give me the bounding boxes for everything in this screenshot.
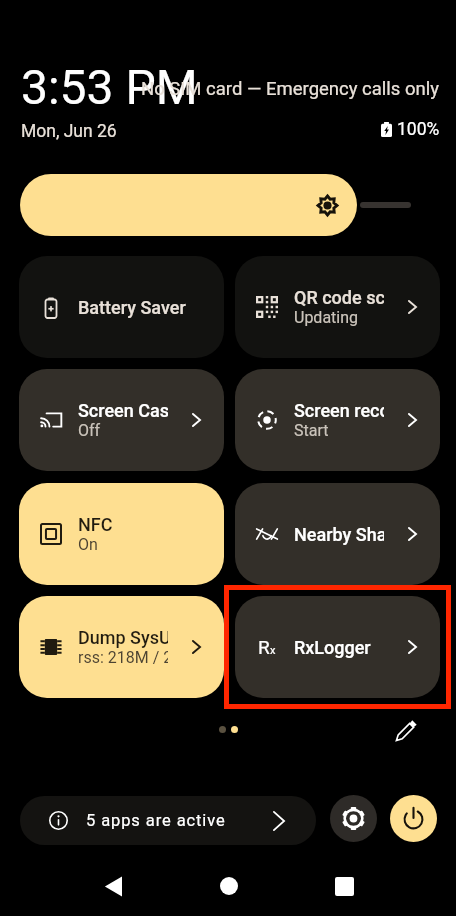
button[interactable]: QR code scanner: [235, 256, 440, 358]
button[interactable]: Settings: [330, 795, 377, 842]
button[interactable]: Nearby Share: [235, 483, 440, 585]
staticText: rss: 218M / 260M: [78, 648, 168, 667]
staticText: Battery Saver: [78, 297, 201, 318]
staticText: x: [270, 644, 276, 657]
staticText: NFC: [78, 514, 113, 535]
button[interactable]: Dump SysUI Heap: [19, 596, 224, 698]
button[interactable]: Home: [205, 862, 253, 910]
staticText: R: [258, 636, 270, 658]
staticText: Off: [78, 421, 101, 440]
staticText: Start: [294, 421, 329, 440]
button[interactable]: 5 apps are active: [20, 796, 316, 845]
button[interactable]: Screen Cast: [19, 369, 224, 471]
staticText: 100%: [397, 119, 440, 140]
staticText: Screen record: [294, 400, 384, 421]
staticText: 5 apps are active: [86, 811, 226, 830]
button[interactable]: Recents: [320, 862, 368, 910]
staticText: QR code scanner: [294, 287, 384, 308]
staticText: Screen Cast: [78, 400, 168, 421]
button[interactable]: Edit tiles: [390, 713, 424, 747]
button[interactable]: Power: [390, 795, 437, 842]
button[interactable]: Brightness: [20, 174, 357, 236]
staticText: On: [78, 535, 98, 554]
button[interactable]: Screen record: [235, 369, 440, 471]
staticText: Dump SysUI Heap: [78, 627, 168, 648]
button[interactable]: Battery Saver: [19, 256, 224, 358]
button[interactable]: R: [235, 596, 440, 698]
staticText: Nearby Share: [294, 524, 384, 545]
staticText: Mon, Jun 26: [21, 121, 117, 142]
button[interactable]: Back: [89, 862, 137, 910]
staticText: RxLogger: [294, 637, 384, 658]
staticText: No SIM card — Emergency calls only: [141, 78, 439, 100]
staticText: 3:53 PM: [21, 59, 198, 115]
button[interactable]: NFC: [19, 483, 224, 585]
staticText: Updating: [294, 308, 359, 327]
